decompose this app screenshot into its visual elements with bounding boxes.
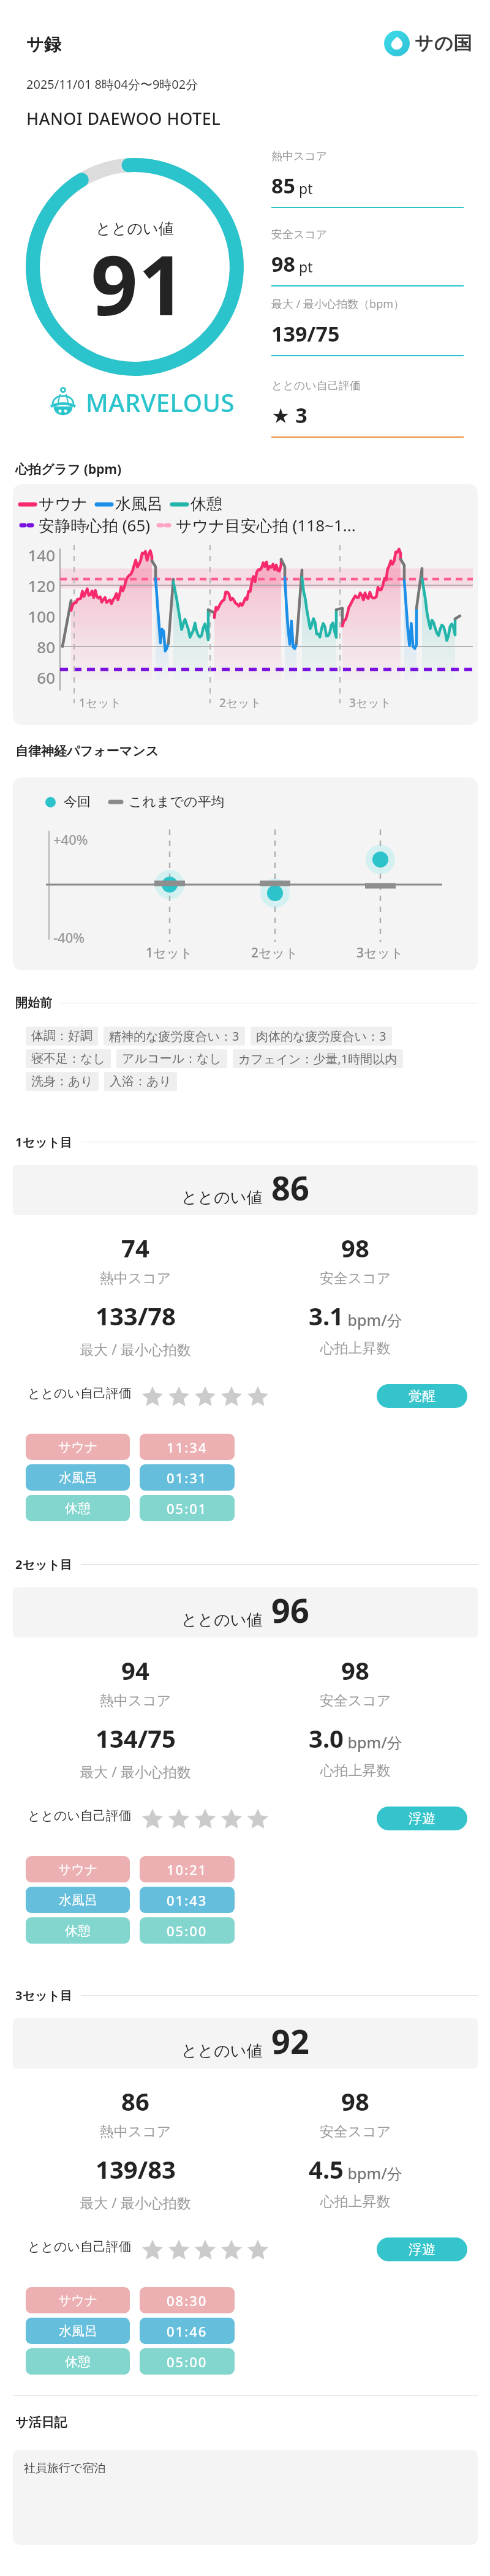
- staticText: -40%: [53, 928, 85, 946]
- staticText: 体調：好調: [31, 1028, 92, 1044]
- staticText: 139/83: [96, 2152, 176, 2185]
- staticText: 熱中スコア: [31, 1692, 239, 1710]
- staticText: MARVELOUS: [86, 386, 235, 419]
- staticText: 心拍上昇数: [251, 2193, 459, 2211]
- staticText: 心拍グラフ (bpm): [15, 460, 122, 478]
- staticText: 熱中スコア: [31, 1270, 239, 1287]
- staticText: 開始前: [15, 995, 52, 1011]
- staticText: 140: [18, 544, 55, 566]
- staticText: +40%: [53, 830, 88, 848]
- staticText: ★ 3: [271, 401, 307, 429]
- staticText: 86: [121, 2084, 149, 2117]
- staticText: カフェイン：少量,1時間以内: [238, 1050, 398, 1067]
- staticText: 安全スコア: [251, 2123, 459, 2141]
- staticText: ととのい自己評価: [28, 1808, 132, 1824]
- staticText: 10:21: [167, 1860, 208, 1879]
- staticText: 05:00: [167, 1922, 208, 1940]
- staticText: 2セット目: [15, 1556, 72, 1573]
- staticText: 80: [18, 636, 55, 657]
- button[interactable]: 浮遊: [377, 1807, 467, 1830]
- staticText: 05:01: [167, 1499, 208, 1518]
- staticText: 水風呂: [59, 2323, 97, 2339]
- staticText: サの国: [415, 32, 473, 55]
- staticText: 自律神経パフォーマンス: [15, 743, 159, 759]
- staticText: 98: [271, 250, 295, 278]
- staticText: 01:43: [167, 1891, 208, 1909]
- staticText: 74: [121, 1231, 149, 1264]
- staticText: 水風呂: [115, 494, 163, 514]
- staticText: 休憩: [65, 1500, 91, 1516]
- staticText: pt: [295, 257, 313, 276]
- staticText: pt: [295, 179, 313, 198]
- staticText: サウナ: [58, 1439, 98, 1455]
- staticText: 熱中スコア: [31, 2123, 239, 2141]
- staticText: ととのい自己評価: [28, 2239, 132, 2255]
- staticText: サ録: [26, 34, 61, 55]
- staticText: 11:34: [167, 1438, 208, 1456]
- staticText: これまでの平均: [129, 793, 225, 811]
- staticText: bpm/分: [344, 2163, 402, 2184]
- staticText: サ活日記: [15, 2414, 67, 2430]
- staticText: ととのい値: [181, 1610, 263, 1630]
- staticText: 最大 / 最小心拍数（bpm）: [271, 296, 405, 312]
- staticText: サウナ: [58, 1862, 98, 1878]
- staticText: 社員旅行で宿泊: [24, 2461, 106, 2476]
- staticText: 85: [271, 171, 295, 200]
- staticText: 今回: [64, 793, 91, 811]
- staticText: 精神的な疲労度合い：3: [109, 1028, 239, 1044]
- staticText: 94: [121, 1653, 149, 1687]
- staticText: 2025/11/01 8時04分〜9時02分: [26, 76, 198, 92]
- staticText: 86: [271, 1165, 309, 1210]
- staticText: 3.0: [309, 1721, 344, 1754]
- staticText: 安全スコア: [271, 228, 328, 242]
- staticText: 休憩: [65, 2354, 91, 2370]
- staticText: 01:31: [167, 1469, 208, 1487]
- button[interactable]: 浮遊: [377, 2237, 467, 2261]
- staticText: 休憩: [65, 1923, 91, 1939]
- staticText: 05:00: [167, 2353, 208, 2371]
- staticText: 1セット: [79, 695, 122, 711]
- staticText: ととのい値: [181, 1188, 263, 1208]
- staticText: 98: [341, 1231, 369, 1264]
- staticText: 01:46: [167, 2322, 208, 2340]
- staticText: 1セット目: [15, 1134, 72, 1150]
- staticText: 3セット: [349, 695, 392, 711]
- staticText: サウナ目安心拍 (118~1...: [176, 514, 356, 536]
- staticText: 60: [18, 667, 55, 688]
- staticText: 133/78: [96, 1299, 176, 1332]
- staticText: 134/75: [96, 1721, 176, 1754]
- staticText: 2セット: [251, 944, 298, 962]
- staticText: bpm/分: [344, 1309, 402, 1330]
- staticText: bpm/分: [344, 1732, 402, 1753]
- staticText: 08:30: [167, 2291, 208, 2310]
- staticText: サウナ: [58, 2293, 98, 2308]
- staticText: 3セット: [356, 944, 404, 962]
- staticText: 安静時心拍 (65): [39, 514, 151, 536]
- staticText: 98: [341, 2084, 369, 2117]
- staticText: ととのい値: [26, 219, 244, 238]
- staticText: 安全スコア: [251, 1692, 459, 1710]
- staticText: 91: [29, 228, 247, 340]
- staticText: 洗身：あり: [31, 1074, 93, 1089]
- staticText: 入浴：あり: [110, 1074, 171, 1089]
- staticText: 休憩: [190, 494, 222, 514]
- staticText: 139/75: [271, 320, 340, 348]
- staticText: ととのい値: [181, 2041, 263, 2061]
- staticText: 100: [18, 605, 55, 627]
- staticText: 熱中スコア: [271, 149, 328, 163]
- button[interactable]: 覚醒: [377, 1384, 467, 1408]
- staticText: 98: [341, 1653, 369, 1687]
- staticText: 120: [18, 575, 55, 596]
- staticText: 安全スコア: [251, 1270, 459, 1287]
- staticText: 92: [271, 2018, 309, 2064]
- staticText: 3セット目: [15, 1987, 72, 2004]
- staticText: 最大 / 最小心拍数: [31, 2193, 239, 2212]
- staticText: 最大 / 最小心拍数: [31, 1339, 239, 1358]
- staticText: 1セット: [146, 944, 193, 962]
- staticText: ととのい自己評価: [271, 379, 361, 393]
- staticText: 肉体的な疲労度合い：3: [256, 1028, 386, 1044]
- staticText: 水風呂: [59, 1892, 97, 1908]
- staticText: サウナ: [39, 494, 88, 514]
- staticText: 寝不足：なし: [31, 1051, 105, 1066]
- staticText: 3.1: [309, 1299, 344, 1332]
